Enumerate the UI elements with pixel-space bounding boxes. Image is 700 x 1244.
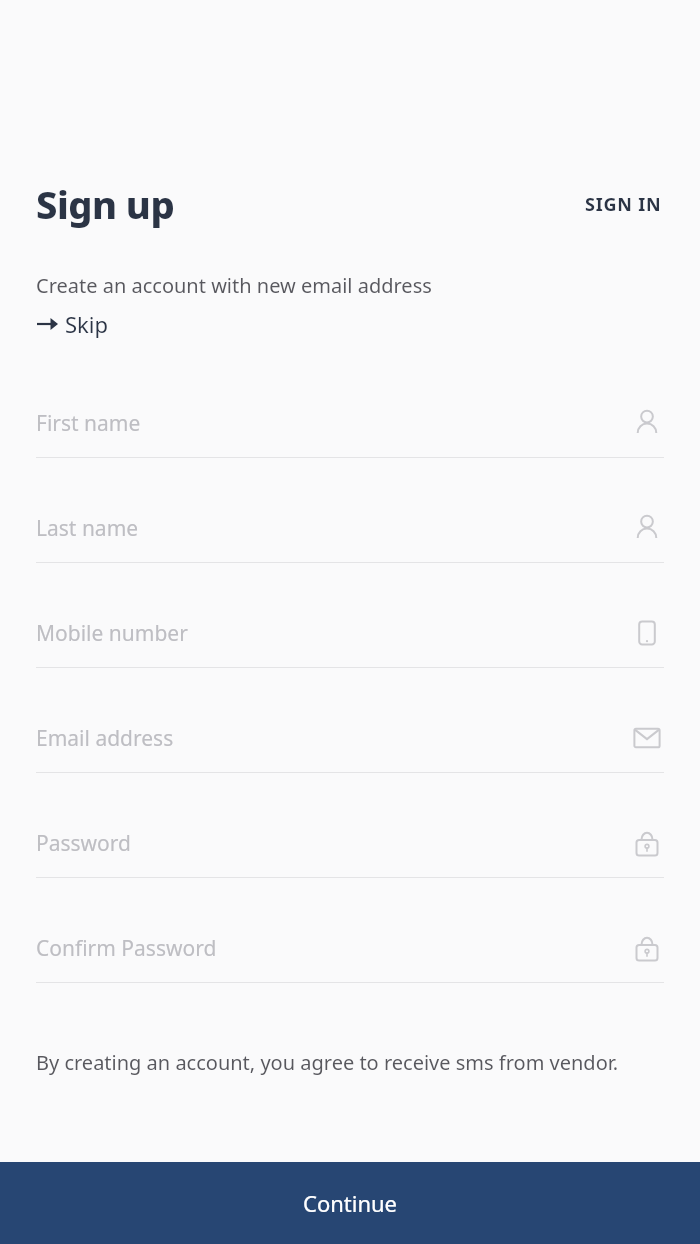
staticText: Sign up <box>36 178 175 230</box>
button[interactable]: SIGN IN <box>583 186 664 223</box>
staticText: Confirm Password <box>36 934 217 963</box>
button[interactable]: Password <box>0 809 700 914</box>
button[interactable]: First name <box>0 389 700 494</box>
staticText: Email address <box>36 724 174 753</box>
staticText: Password <box>36 829 131 858</box>
button[interactable]: Continue <box>0 1162 700 1244</box>
other: Password <box>630 826 664 860</box>
staticText: SIGN IN <box>585 192 662 217</box>
other: Last name <box>630 511 664 545</box>
staticText: Create an account with new email address <box>36 272 432 299</box>
staticText: Last name <box>36 514 139 543</box>
button[interactable]: Email address <box>0 704 700 809</box>
button[interactable]: Confirm Password <box>0 914 700 1019</box>
other: Email address <box>630 721 664 755</box>
staticText: Skip <box>65 309 109 339</box>
staticText: Mobile number <box>36 619 188 648</box>
staticText: Continue <box>303 1188 398 1218</box>
other: Confirm Password <box>630 931 664 965</box>
staticText: By creating an account, you agree to rec… <box>36 1049 619 1076</box>
button[interactable]: Last name <box>0 494 700 599</box>
other: First name <box>630 406 664 440</box>
button[interactable]: Skip <box>36 307 117 341</box>
button[interactable]: Mobile number <box>0 599 700 704</box>
other: Mobile number <box>630 616 664 650</box>
staticText: First name <box>36 409 141 438</box>
